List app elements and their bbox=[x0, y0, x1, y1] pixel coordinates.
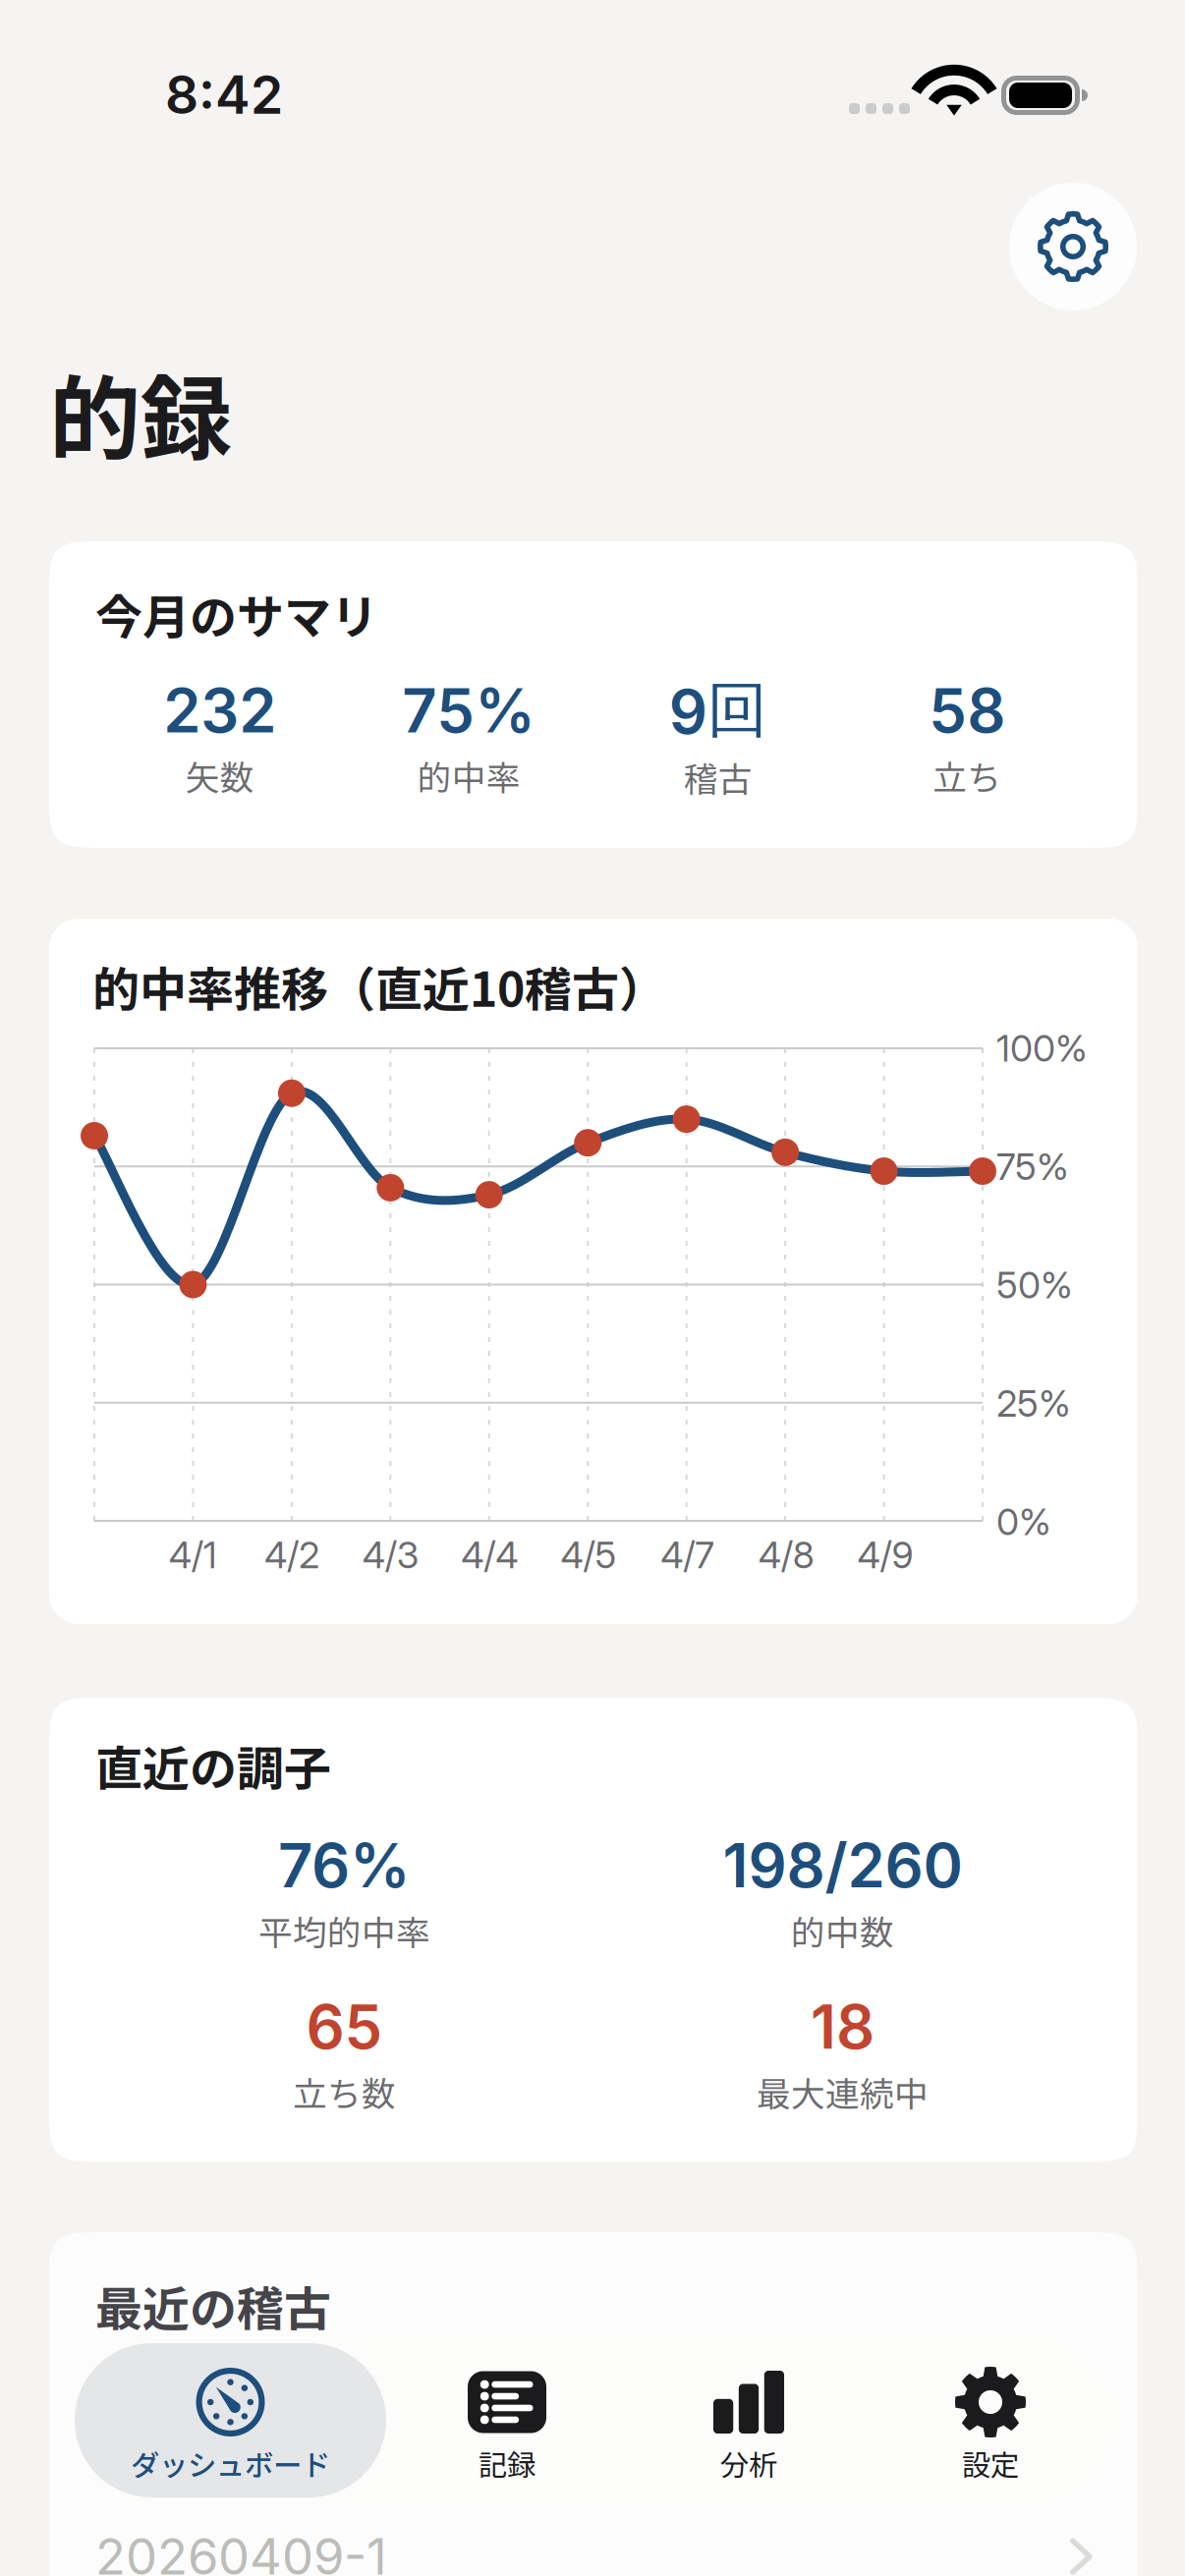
staticText: 198/260 bbox=[723, 1829, 962, 1902]
button[interactable]: 記録 bbox=[386, 2343, 628, 2497]
staticText: 平均的中率 bbox=[258, 1906, 430, 1955]
staticText: 8:42 bbox=[165, 63, 283, 126]
staticText: 矢数 bbox=[186, 751, 254, 800]
staticText: 分析 bbox=[720, 2442, 777, 2484]
staticText: 9回 bbox=[669, 672, 767, 748]
staticText: 4/1 bbox=[169, 1533, 217, 1577]
button[interactable]: 設定 bbox=[870, 2343, 1111, 2497]
staticText: 的中率 bbox=[417, 751, 521, 800]
staticText: 4/9 bbox=[857, 1533, 913, 1577]
button[interactable]: 分析 bbox=[628, 2343, 870, 2497]
staticText: 75% bbox=[402, 674, 536, 747]
staticText: 20260409-1 bbox=[95, 2363, 387, 2424]
staticText: 100% bbox=[996, 1026, 1088, 1070]
staticText: 25% bbox=[996, 1381, 1071, 1426]
staticText: 4/4 bbox=[461, 1533, 518, 1577]
staticText: 18 bbox=[811, 1990, 875, 2063]
staticText: 立ち bbox=[933, 751, 1001, 800]
staticText: 立ち数 bbox=[293, 2067, 396, 2117]
staticText: 最大連続中 bbox=[757, 2067, 929, 2117]
staticText: 的録 bbox=[49, 346, 232, 479]
button[interactable]: ダッシュボード bbox=[75, 2343, 386, 2497]
staticText: ダッシュボード bbox=[131, 2442, 330, 2484]
staticText: 最近の稽古 bbox=[95, 2271, 331, 2340]
staticText: 4/8 bbox=[758, 1533, 814, 1577]
staticText: 50% bbox=[996, 1263, 1073, 1307]
button[interactable]: Settings bbox=[1009, 183, 1137, 310]
staticText: 232 bbox=[163, 674, 276, 747]
staticText: 4/3 bbox=[362, 1533, 419, 1577]
staticText: 記録 bbox=[479, 2442, 536, 2484]
staticText: 75% bbox=[996, 1144, 1069, 1189]
button[interactable]: 20260409-1 bbox=[95, 2363, 1092, 2526]
staticText: 76% bbox=[278, 1829, 411, 1902]
staticText: 的中率推移（直近10稽古） bbox=[92, 952, 666, 1020]
button[interactable]: 20260409-1 bbox=[95, 2526, 1092, 2576]
staticText: 直近の調子 bbox=[95, 1731, 331, 1799]
staticText: 4/7 bbox=[660, 1533, 715, 1577]
staticText: 4/5 bbox=[561, 1533, 617, 1577]
staticText: 4/2 bbox=[264, 1533, 319, 1577]
staticText: 20260409-1 bbox=[95, 2526, 387, 2576]
staticText: 今月のサマリ bbox=[95, 580, 378, 648]
staticText: 58 bbox=[929, 674, 1005, 747]
staticText: 65 bbox=[306, 1990, 383, 2063]
staticText: 稽古 bbox=[684, 752, 752, 802]
staticText: 0% bbox=[996, 1500, 1051, 1544]
staticText: 的中数 bbox=[791, 1906, 894, 1955]
staticText: 設定 bbox=[962, 2442, 1019, 2484]
